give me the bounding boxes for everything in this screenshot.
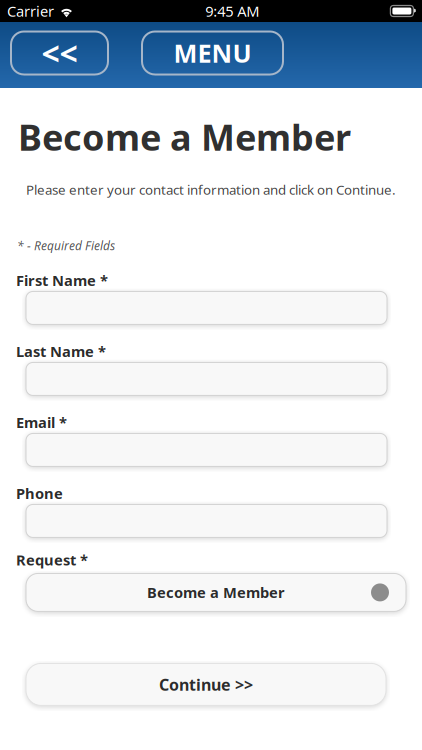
staticText: Become a Member — [147, 583, 285, 602]
staticText: Phone — [16, 483, 63, 503]
button[interactable]: Menu — [142, 31, 283, 74]
staticText: << — [41, 32, 77, 74]
button[interactable]: Phone — [26, 504, 387, 537]
button[interactable]: First Name * — [26, 291, 387, 324]
staticText: First Name * — [16, 270, 108, 290]
staticText: Carrier — [7, 1, 54, 21]
staticText: Please enter your contact information an… — [26, 181, 396, 198]
staticText: Continue >> — [159, 674, 253, 695]
button[interactable]: Last Name * — [26, 362, 387, 395]
button[interactable]: Become a Member — [26, 573, 406, 611]
staticText: MENU — [173, 36, 251, 70]
button[interactable]: Back — [11, 31, 108, 74]
staticText: * - Required Fields — [17, 237, 115, 253]
staticText: Become a Member — [18, 113, 351, 161]
button[interactable]: Email * — [26, 433, 387, 466]
button[interactable]: Continue >> — [26, 663, 386, 705]
staticText: Email * — [16, 412, 67, 432]
staticText: 9:45 AM — [205, 1, 259, 21]
staticText: Request * — [16, 550, 88, 569]
staticText: Last Name * — [16, 341, 106, 361]
